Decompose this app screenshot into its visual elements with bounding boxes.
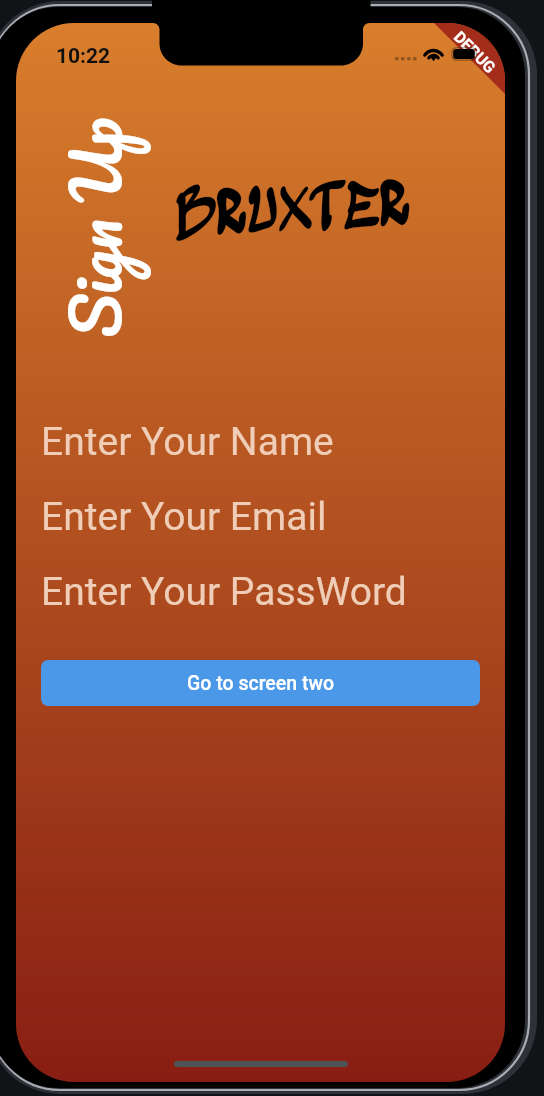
- button[interactable]: Enter Your PassWord: [41, 569, 480, 615]
- staticText: Enter Your PassWord: [41, 569, 407, 615]
- button[interactable]: Go to screen two: [41, 660, 480, 706]
- staticText: Enter Your Name: [41, 419, 334, 465]
- staticText: Enter Your Email: [41, 494, 327, 540]
- button[interactable]: Enter Your Email: [41, 494, 480, 540]
- staticText: BRUXTER: [172, 169, 413, 251]
- staticText: DEBUG: [450, 27, 500, 78]
- staticText: 10:22: [56, 44, 111, 69]
- button[interactable]: Enter Your Name: [41, 419, 480, 465]
- staticText: Sign Up: [40, 117, 151, 338]
- staticText: Go to screen two: [187, 672, 335, 695]
